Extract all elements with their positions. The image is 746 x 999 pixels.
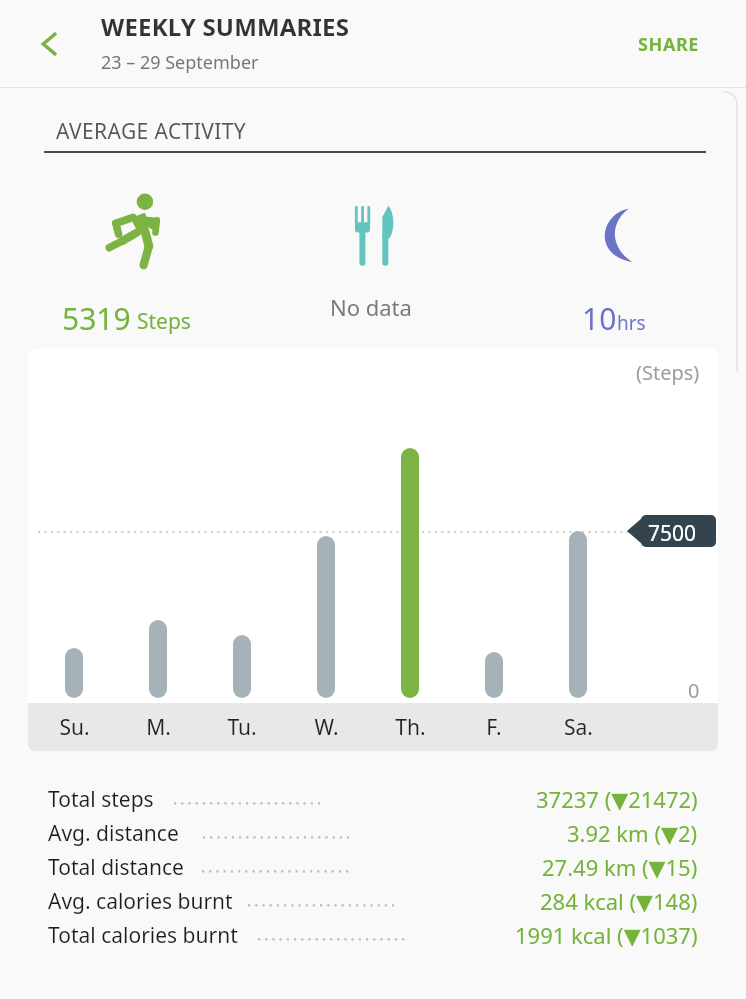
staticText: Total steps [48,785,154,814]
staticText: (Steps) [636,359,700,386]
staticText: Steps [137,307,191,336]
staticText: 23 – 29 September [101,50,259,75]
staticText: 10 [582,298,617,339]
staticText: SHARE [638,32,700,57]
staticText: hrs [617,310,646,336]
staticText: No data [330,292,412,322]
button[interactable]: Total distance [48,850,698,884]
staticText: 3.92 km (▼2) [567,818,698,848]
button[interactable]: (Steps) [28,349,718,751]
staticText: 27.49 km (▼15) [542,852,698,882]
staticText: 5319 [62,298,131,339]
staticText: 284 kcal (▼148) [540,886,698,916]
button[interactable]: Total calories burnt [48,918,698,952]
button[interactable]: Avg. distance [48,816,698,850]
staticText: AVERAGE ACTIVITY [56,117,247,146]
button[interactable]: Avg. calories burnt [48,884,698,918]
staticText: M. [146,713,171,742]
staticText: 1991 kcal (▼1037) [515,920,698,950]
staticText: Avg. calories burnt [48,887,233,916]
staticText: 7500 [648,519,697,548]
staticText: WEEKLY SUMMARIES [101,10,350,43]
staticText: W. [314,713,339,742]
button[interactable]: SHARE [614,20,724,68]
staticText: Total distance [48,853,184,882]
staticText: Total calories burnt [48,921,238,950]
button[interactable]: Back [22,16,78,72]
staticText: Tu. [227,713,257,742]
staticText: Su. [59,713,90,742]
staticText: F. [486,713,502,742]
staticText: Avg. distance [48,819,179,848]
staticText: 37237 (▼21472) [536,784,698,814]
staticText: 0 [688,677,700,704]
button[interactable]: Total steps [48,782,698,816]
staticText: Th. [395,713,426,742]
staticText: Sa. [564,713,593,742]
